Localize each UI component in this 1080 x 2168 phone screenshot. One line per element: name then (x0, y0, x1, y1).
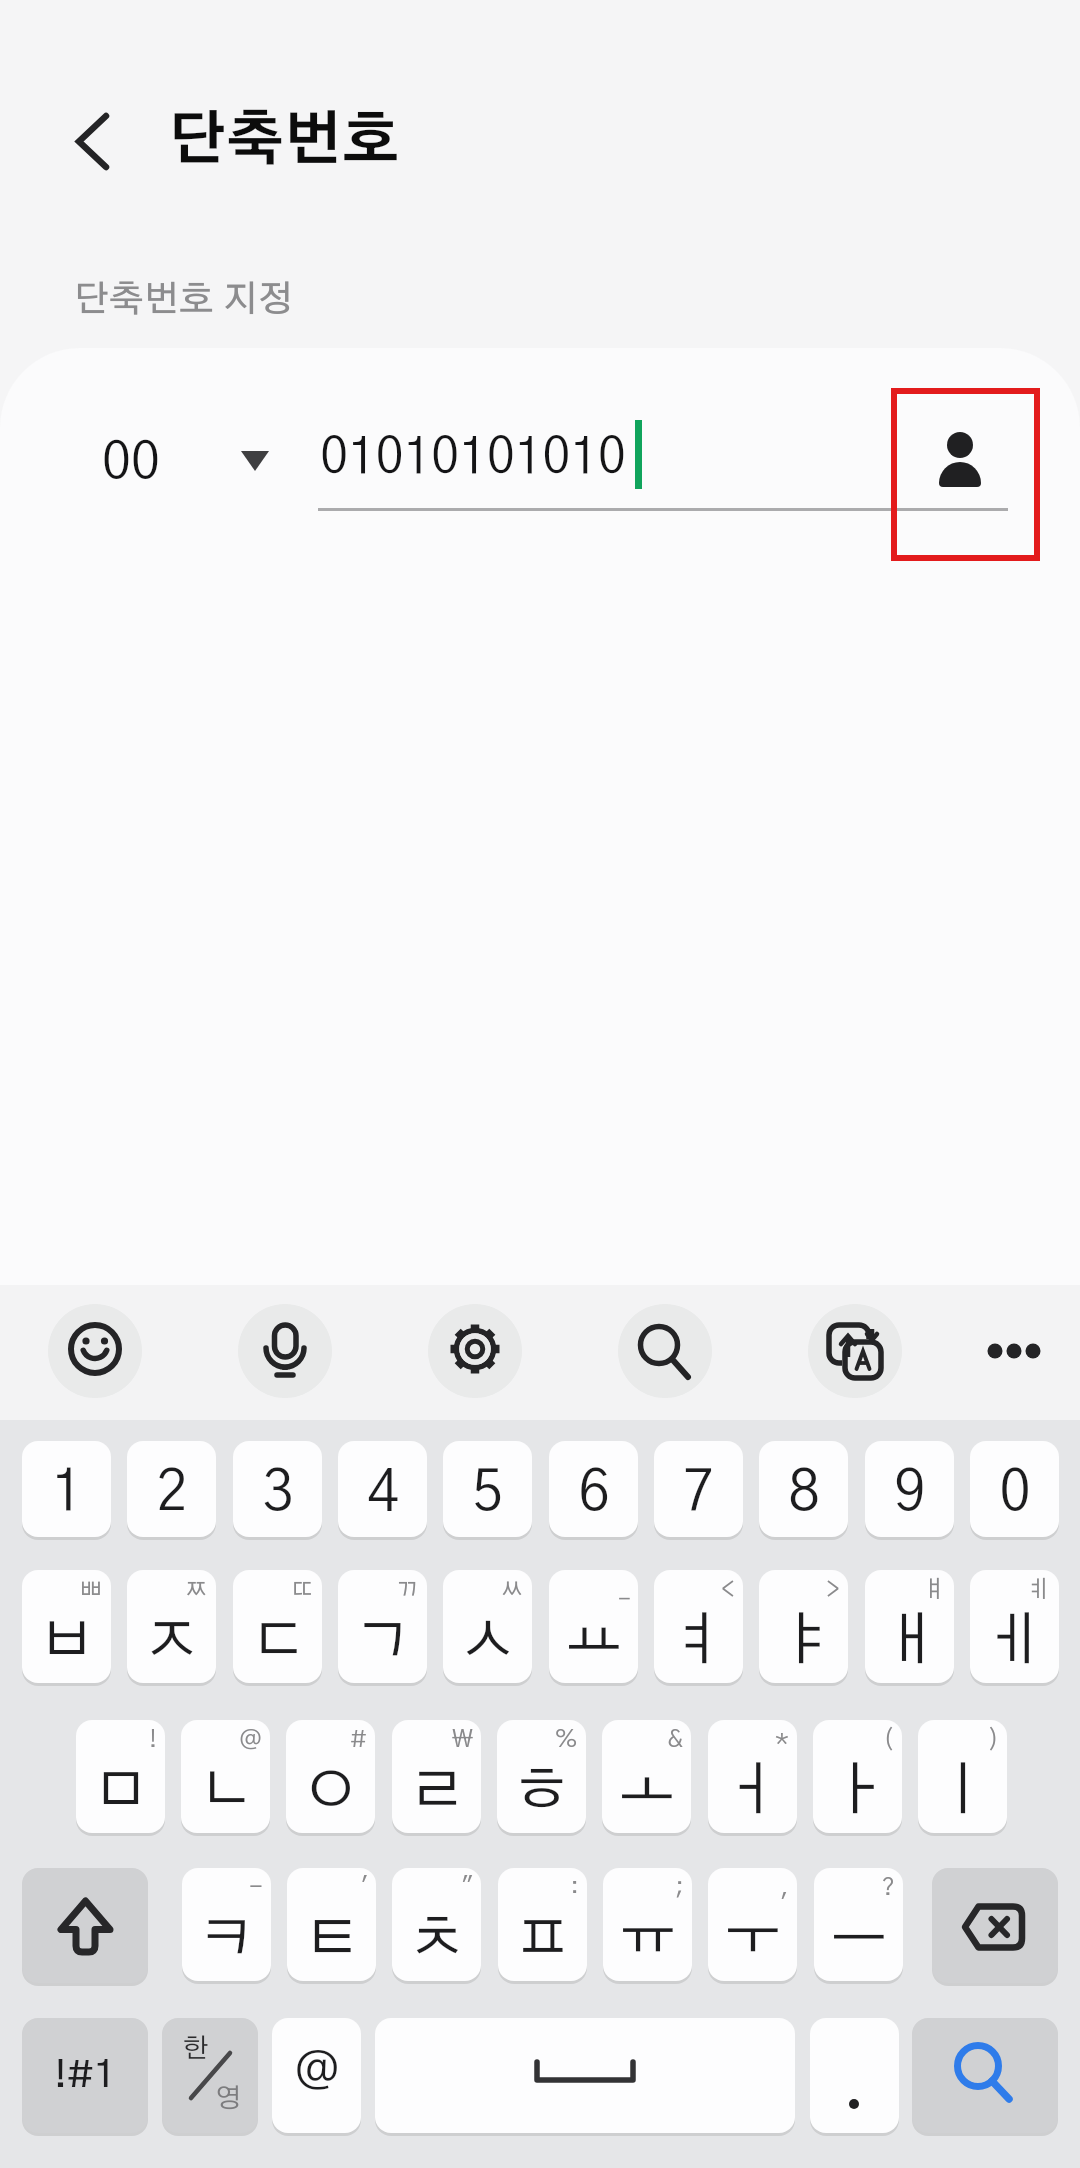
staticText: ㅋ (198, 1911, 256, 1969)
staticText: ㅎ (513, 1763, 571, 1821)
staticText: ㅣ (934, 1763, 992, 1821)
staticText: ㄸ (290, 1578, 314, 1602)
staticText: ₩ (452, 1728, 473, 1752)
staticText: @ (239, 1728, 262, 1752)
button[interactable]: ㅂ (22, 1570, 111, 1683)
staticText: ㅉ (184, 1578, 208, 1602)
staticText: ㅡ (830, 1911, 888, 1969)
staticText: ㅃ (79, 1578, 103, 1602)
button[interactable]: 2 (127, 1441, 216, 1537)
staticText: 영 (215, 2085, 241, 2112)
button[interactable] (90, 420, 285, 500)
staticText: 한 (183, 2035, 209, 2062)
button[interactable] (238, 1304, 332, 1398)
staticText: - (249, 1876, 263, 1900)
staticText: 4 (367, 1465, 399, 1521)
staticText: ? (881, 1876, 895, 1900)
button[interactable]: 3 (233, 1441, 322, 1537)
button[interactable] (932, 1868, 1058, 1983)
button[interactable]: ㄹ (392, 1720, 481, 1833)
button[interactable]: ㅛ (549, 1570, 638, 1683)
staticText: 6 (578, 1465, 610, 1521)
button[interactable]: ㅠ (603, 1868, 692, 1981)
button[interactable]: ㅋ (182, 1868, 271, 1981)
button[interactable] (975, 1310, 1055, 1394)
button[interactable]: 7 (654, 1441, 743, 1537)
staticText: , (780, 1876, 789, 1900)
staticText: & (667, 1728, 683, 1752)
button[interactable]: 4 (338, 1441, 427, 1537)
staticText: % (554, 1728, 578, 1752)
staticText: 01010101010 (320, 433, 626, 483)
staticText: : (570, 1876, 579, 1900)
button[interactable]: ㅕ (654, 1570, 743, 1683)
button[interactable]: ㅜ (708, 1868, 797, 1981)
button[interactable]: ㅏ (813, 1720, 902, 1833)
button[interactable]: ㄴ (181, 1720, 270, 1833)
staticText: 1 (51, 1465, 83, 1521)
staticText: @ (294, 2048, 340, 2096)
button[interactable] (162, 2018, 258, 2133)
button[interactable] (375, 2018, 795, 2133)
button[interactable]: ㅡ (814, 1868, 903, 1981)
staticText: 8 (788, 1465, 820, 1521)
button[interactable] (58, 103, 128, 181)
button[interactable]: ㄱ (338, 1570, 427, 1683)
button[interactable]: ㅑ (759, 1570, 848, 1683)
button[interactable]: ㅎ (497, 1720, 586, 1833)
button[interactable]: @ (272, 2018, 361, 2133)
staticText: ㅠ (619, 1911, 677, 1969)
button[interactable] (618, 1304, 712, 1398)
staticText: > (826, 1578, 840, 1602)
staticText: ㅈ (143, 1613, 201, 1671)
staticText: ㅍ (514, 1911, 572, 1969)
button[interactable]: ㅈ (127, 1570, 216, 1683)
staticText: ㅂ (38, 1613, 96, 1671)
button[interactable] (808, 1304, 902, 1398)
button[interactable]: 5 (443, 1441, 532, 1537)
button[interactable]: ㅌ (287, 1868, 376, 1981)
button[interactable]: 0 (970, 1441, 1059, 1537)
button[interactable] (810, 2018, 899, 2133)
staticText: ㅖ (1027, 1578, 1051, 1602)
button[interactable]: ㅣ (918, 1720, 1007, 1833)
button[interactable]: ㅔ (970, 1570, 1059, 1683)
button[interactable]: ㅇ (286, 1720, 375, 1833)
button[interactable] (318, 410, 1008, 514)
staticText: ㄱ (354, 1613, 412, 1671)
button[interactable] (48, 1304, 142, 1398)
button[interactable] (428, 1304, 522, 1398)
staticText: 5 (472, 1465, 504, 1521)
staticText: ㅜ (724, 1911, 782, 1969)
staticText: ㅗ (618, 1763, 676, 1821)
staticText: 2 (156, 1465, 188, 1521)
staticText: ㅒ (922, 1578, 946, 1602)
button[interactable]: ㅓ (708, 1720, 797, 1833)
staticText: 단축번호 (168, 113, 400, 171)
button[interactable]: ㅐ (865, 1570, 954, 1683)
staticText: # (350, 1728, 367, 1752)
staticText: ( (883, 1728, 894, 1752)
staticText: ㄹ (408, 1763, 466, 1821)
staticText: 9 (894, 1465, 926, 1521)
staticText: ㅐ (881, 1613, 939, 1671)
button[interactable]: 1 (22, 1441, 111, 1537)
button[interactable]: !#1 (22, 2018, 148, 2133)
button[interactable]: ㄷ (233, 1570, 322, 1683)
button[interactable]: ㅁ (76, 1720, 165, 1833)
button[interactable]: ㅅ (443, 1570, 532, 1683)
staticText: 0 (999, 1465, 1031, 1521)
button[interactable]: 8 (759, 1441, 848, 1537)
button[interactable]: 9 (865, 1441, 954, 1537)
button[interactable] (22, 1868, 148, 1983)
staticText: ㅛ (565, 1613, 623, 1671)
staticText: !#1 (54, 2057, 116, 2095)
button[interactable]: ㅍ (498, 1868, 587, 1981)
button[interactable] (894, 391, 1037, 558)
button[interactable]: ㅗ (602, 1720, 691, 1833)
button[interactable]: ㅊ (392, 1868, 481, 1981)
button[interactable] (912, 2018, 1058, 2133)
staticText: ㅕ (670, 1613, 728, 1671)
button[interactable]: 6 (549, 1441, 638, 1537)
staticText: ㅅ (459, 1613, 517, 1671)
